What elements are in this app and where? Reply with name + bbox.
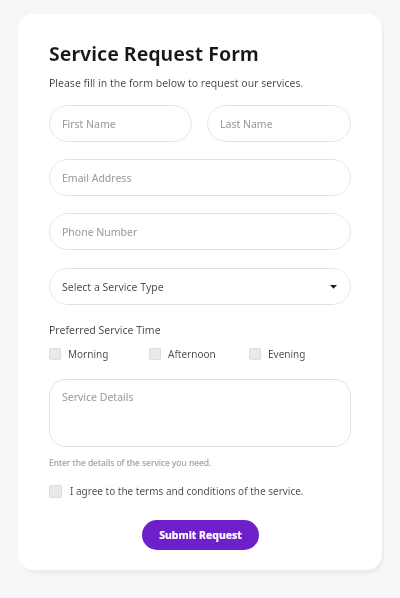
button[interactable]: Submit Request bbox=[142, 520, 259, 550]
other: Open service type list bbox=[329, 282, 338, 291]
staticText: Please fill in the form below to request… bbox=[49, 76, 304, 90]
button[interactable]: Evening bbox=[249, 347, 306, 361]
staticText: Submit Request bbox=[159, 528, 242, 542]
staticText: Select a Service Type bbox=[62, 280, 164, 294]
staticText: Phone Number bbox=[62, 225, 138, 239]
button[interactable]: Morning bbox=[49, 347, 109, 361]
button[interactable]: Phone Number bbox=[49, 213, 351, 250]
button[interactable]: Select a Service Type bbox=[49, 268, 351, 305]
button[interactable]: I agree to the terms and conditions of t… bbox=[49, 484, 351, 498]
button[interactable]: Afternoon bbox=[149, 347, 216, 361]
staticText: Enter the details of the service you nee… bbox=[49, 457, 212, 469]
staticText: Last Name bbox=[220, 117, 273, 131]
staticText: Email Address bbox=[62, 171, 132, 185]
button[interactable]: First Name bbox=[49, 105, 192, 142]
staticText: Evening bbox=[268, 347, 306, 361]
staticText: Preferred Service Time bbox=[49, 323, 161, 337]
staticText: Service Details bbox=[62, 390, 134, 404]
button[interactable]: Last Name bbox=[207, 105, 351, 142]
staticText: Afternoon bbox=[168, 347, 216, 361]
staticText: Service Request Form bbox=[49, 40, 259, 67]
staticText: First Name bbox=[62, 117, 116, 131]
button[interactable]: Service Details bbox=[49, 379, 351, 447]
staticText: I agree to the terms and conditions of t… bbox=[70, 484, 304, 498]
button[interactable]: Email Address bbox=[49, 159, 351, 196]
staticText: Morning bbox=[68, 347, 109, 361]
